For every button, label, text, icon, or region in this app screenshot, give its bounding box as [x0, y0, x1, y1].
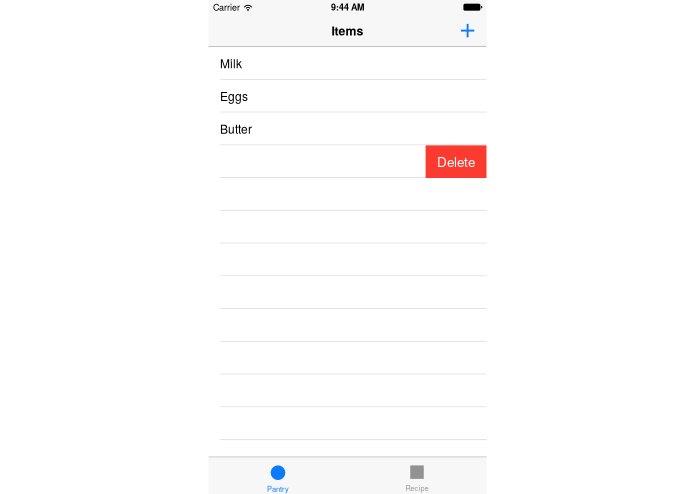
staticText: Carrier [213, 0, 240, 13]
button[interactable]: Recipe [347, 457, 486, 494]
staticText: Recipe [405, 482, 428, 493]
button[interactable]: Add [461, 24, 486, 37]
button[interactable]: Butter [208, 113, 486, 145]
staticText: Eggs [220, 87, 248, 104]
button[interactable]: Eggs [208, 80, 486, 113]
staticText: Pantry [267, 483, 289, 494]
staticText: Milk [220, 54, 242, 72]
button[interactable]: Pantry [208, 457, 347, 494]
staticText: 9:44 AM [331, 0, 364, 13]
staticText: Delete [437, 151, 475, 171]
button[interactable]: Delete [426, 145, 486, 178]
button[interactable]: Milk [208, 47, 486, 80]
staticText: Items [331, 22, 363, 39]
staticText: Butter [220, 120, 252, 137]
